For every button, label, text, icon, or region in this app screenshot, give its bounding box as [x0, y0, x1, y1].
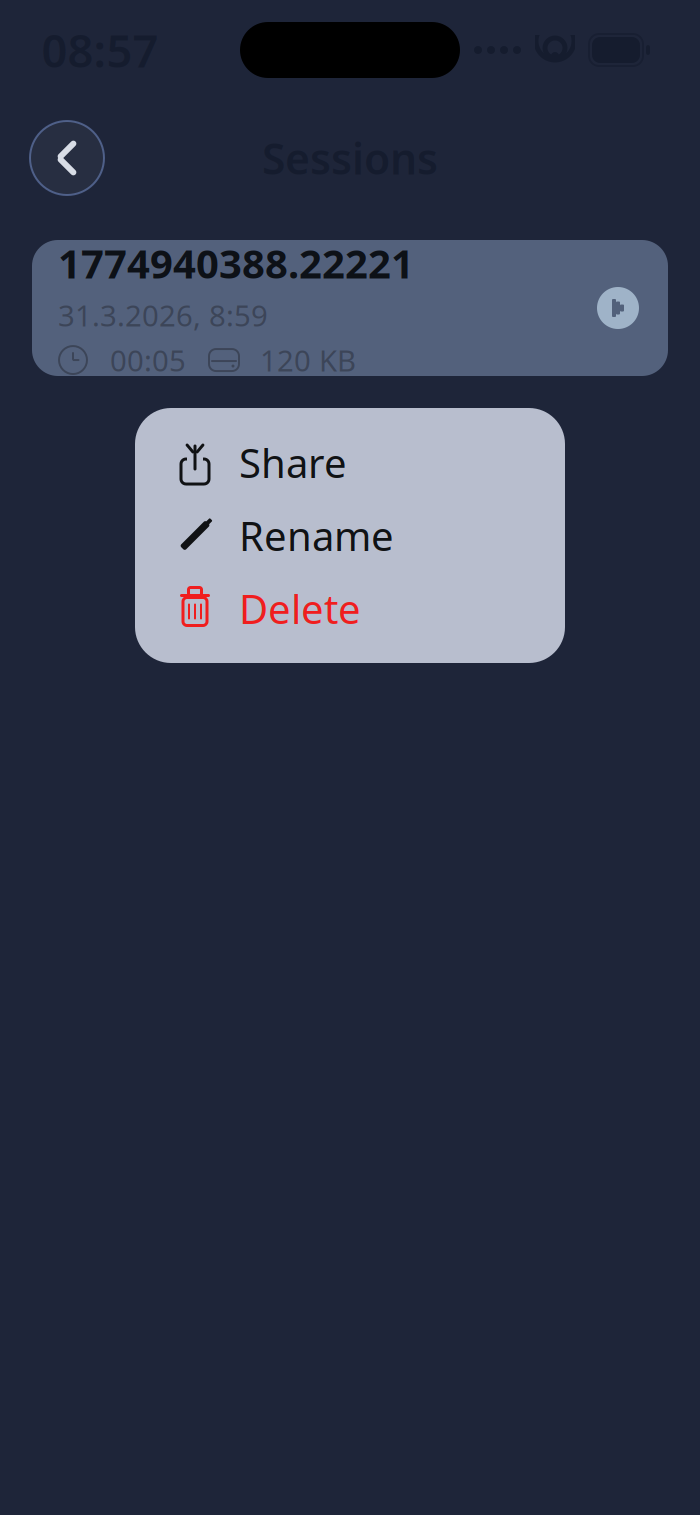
staticText: Share	[239, 436, 347, 489]
staticText: 00:05	[110, 341, 186, 380]
button[interactable]: 1774940388.22221	[32, 240, 668, 376]
button[interactable]: Share	[135, 426, 565, 499]
staticText: 120 KB	[260, 341, 356, 380]
staticText: Delete	[239, 582, 361, 635]
button[interactable]: Rename	[135, 499, 565, 572]
button[interactable]: Back	[24, 115, 110, 201]
staticText: Rename	[239, 509, 394, 562]
staticText: 08:57	[41, 20, 158, 80]
staticText: Sessions	[262, 130, 438, 186]
staticText: 31.3.2026, 8:59	[58, 296, 268, 335]
button[interactable]: Delete	[135, 572, 565, 645]
staticText: 1774940388.22221	[58, 236, 414, 290]
